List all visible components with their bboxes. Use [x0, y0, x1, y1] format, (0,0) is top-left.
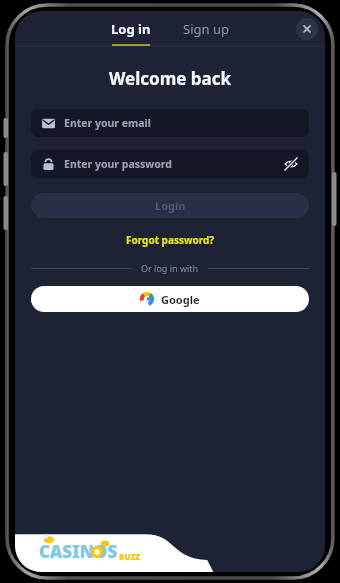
button[interactable]: Login: [31, 193, 309, 218]
button[interactable]: Enter your password: [31, 150, 309, 178]
button[interactable]: Casinos Buzz: [39, 540, 141, 563]
staticText: Enter your password: [64, 157, 172, 171]
staticText: CASINOS: [39, 540, 118, 563]
staticText: Login: [155, 198, 186, 213]
staticText: Forgot password?: [126, 233, 215, 247]
staticText: Log in: [111, 20, 151, 38]
staticText: Google: [161, 292, 200, 307]
button[interactable]: Google: [31, 286, 309, 312]
staticText: Or log in with: [141, 262, 199, 274]
button[interactable]: Forgot password?: [120, 231, 221, 249]
staticText: BUZZ: [119, 551, 141, 562]
button[interactable]: Log in: [103, 11, 159, 47]
staticText: Enter your email: [64, 116, 151, 130]
button[interactable]: Show password: [282, 155, 300, 173]
button[interactable]: Close: [296, 18, 318, 40]
button[interactable]: Enter your email: [31, 109, 309, 137]
staticText: Sign up: [183, 20, 229, 38]
button[interactable]: Sign up: [175, 11, 237, 47]
staticText: Welcome back: [15, 67, 325, 90]
